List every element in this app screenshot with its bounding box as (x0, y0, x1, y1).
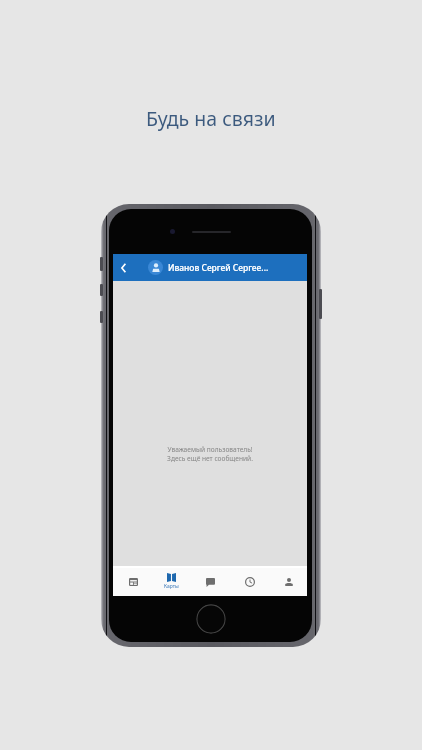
button[interactable]: News (114, 568, 152, 596)
staticText: Уважаемый пользователь! Здесь ещё нет со… (167, 445, 253, 462)
button[interactable]: History (230, 568, 269, 596)
button[interactable]: Messages (191, 568, 230, 596)
button[interactable]: Profile (269, 568, 308, 596)
staticText: Будь на связи (146, 105, 276, 132)
staticText: Иванов Сергей Сергее... (168, 262, 269, 274)
button[interactable]: Back (113, 254, 134, 281)
staticText: Карты (164, 583, 179, 590)
button[interactable]: Back (113, 254, 307, 281)
button[interactable]: Maps (152, 568, 191, 596)
